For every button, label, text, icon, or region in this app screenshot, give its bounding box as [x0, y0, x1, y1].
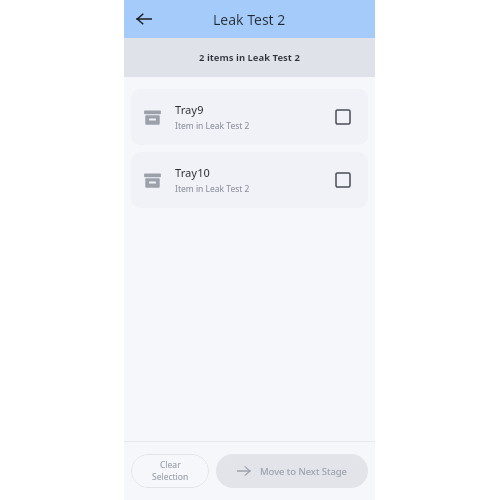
button[interactable]: Select Tray9 [330, 104, 356, 130]
staticText: 2 items in Leak Test 2 [199, 51, 300, 64]
button[interactable]: Tray9 [131, 89, 368, 145]
staticText: Item in Leak Test 2 [175, 183, 250, 195]
staticText: Item in Leak Test 2 [175, 120, 250, 132]
staticText: Leak Test 2 [213, 10, 286, 29]
staticText: Selection [152, 471, 189, 483]
button[interactable]: Select Tray10 [330, 167, 356, 193]
button[interactable]: Back [130, 5, 158, 33]
staticText: Clear [160, 459, 181, 471]
button[interactable]: Clear [131, 454, 209, 488]
staticText: Move to Next Stage [260, 465, 347, 478]
button[interactable]: Move to Next Stage [216, 454, 368, 488]
staticText: Tray10 [175, 165, 210, 180]
button[interactable]: Tray10 [131, 152, 368, 208]
staticText: Tray9 [175, 102, 204, 117]
